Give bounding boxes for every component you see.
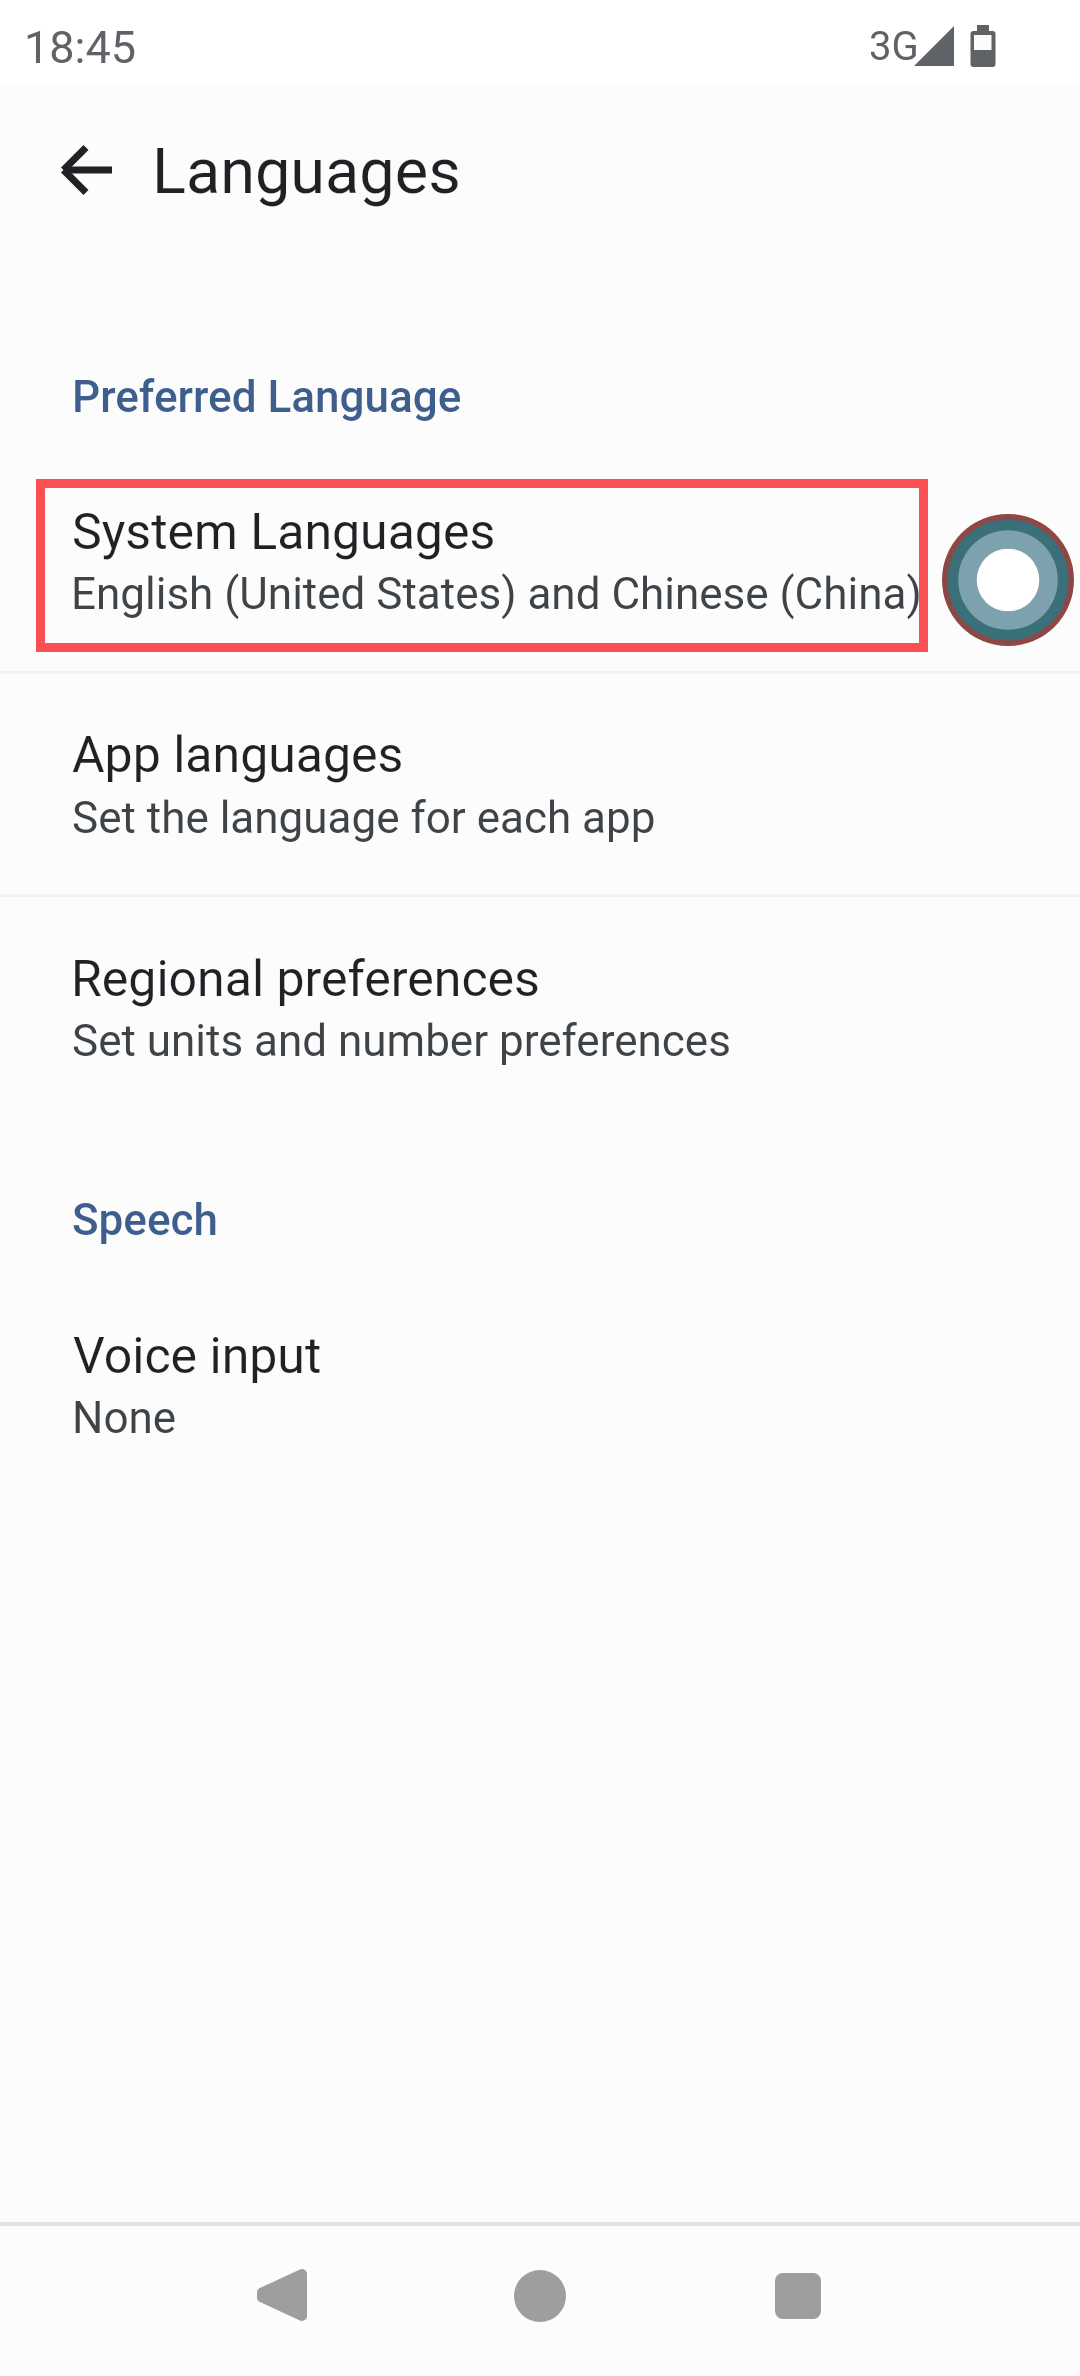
staticText: 3G [869,23,919,70]
button[interactable]: Home [440,2220,640,2372]
staticText: 18:45 [24,21,137,74]
staticText: Languages [152,135,461,209]
button[interactable]: Recent apps [698,2220,898,2372]
button[interactable]: Regional preferences [0,897,1080,1117]
staticText: App languages [72,726,404,785]
staticText: Set units and number preferences [72,1015,731,1067]
button[interactable]: Voice input [0,1302,1080,1495]
button[interactable]: System Languages [0,478,1080,671]
staticText: English (United States) and Chinese (Chi… [71,568,922,620]
button[interactable]: Back [181,2220,381,2372]
button[interactable]: App languages [0,674,1080,894]
staticText: Regional preferences [71,950,540,1009]
staticText: Voice input [73,1327,322,1386]
staticText: Preferred Language [72,371,462,423]
staticText: Set the language for each app [72,792,656,844]
staticText: None [72,1392,177,1444]
staticText: System Languages [72,503,496,562]
staticText: Speech [72,1194,219,1246]
button[interactable]: Navigate up [38,122,134,218]
